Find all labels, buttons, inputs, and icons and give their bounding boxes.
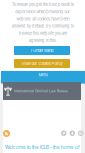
button[interactable]: Twitter [61, 130, 66, 136]
button[interactable]: Website [78, 130, 83, 136]
staticText: To ensure you get the best possible expe… [11, 2, 73, 43]
staticText: View our Cookie Policy [21, 61, 62, 66]
button[interactable]: View our Cookie Policy [14, 59, 70, 68]
staticText: I Understand [31, 48, 53, 53]
staticText: Welcome to the ICLB - the home of [5, 145, 80, 150]
button[interactable]: Facebook [69, 130, 75, 136]
button[interactable]: Welcome to the ICLB - the home of [5, 145, 80, 150]
button[interactable]: I Understand [14, 46, 70, 55]
staticText: International Criminal Law Bureau [14, 89, 68, 93]
button[interactable]: Menu [1, 71, 85, 84]
staticText: Menu [38, 73, 47, 77]
button[interactable]: RSS feed [3, 130, 10, 137]
